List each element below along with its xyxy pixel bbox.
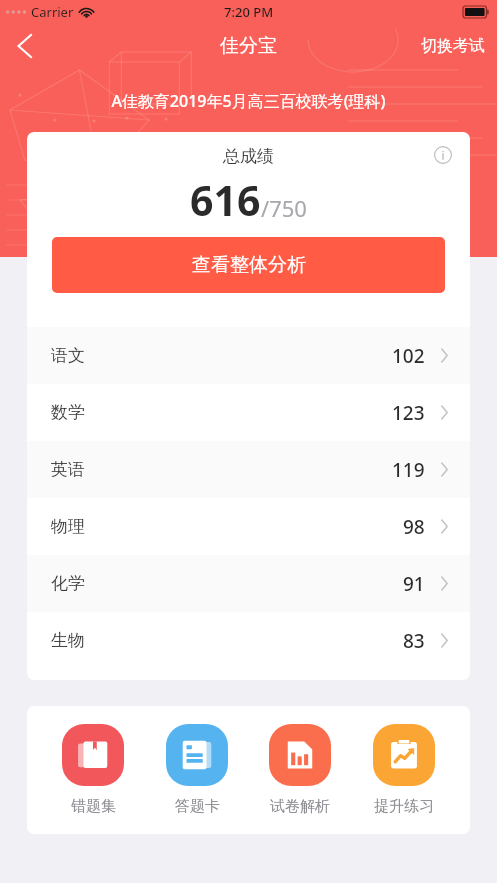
button[interactable]: 物理 xyxy=(27,498,470,555)
staticText: 98 xyxy=(403,514,425,540)
staticText: 616 xyxy=(190,172,261,228)
staticText: 119 xyxy=(392,457,425,483)
staticText: 83 xyxy=(403,628,425,654)
button[interactable]: 化学 xyxy=(27,555,470,612)
staticText: 查看整体分析 xyxy=(192,253,306,277)
button[interactable]: 提升练习 xyxy=(367,724,441,816)
staticText: A佳教育2019年5月高三百校联考(理科) xyxy=(0,90,497,112)
staticText: 切换考试 xyxy=(421,36,485,56)
button[interactable]: 试卷解析 xyxy=(263,724,337,816)
staticText: 语文 xyxy=(51,345,85,366)
button[interactable]: 数学 xyxy=(27,384,470,441)
staticText: 7:20 PM xyxy=(224,3,274,21)
button[interactable]: 错题集 xyxy=(56,724,130,816)
staticText: 答题卡 xyxy=(175,797,220,816)
staticText: 英语 xyxy=(51,459,85,480)
button[interactable]: 生物 xyxy=(27,612,470,669)
staticText: 123 xyxy=(392,400,425,426)
staticText: /750 xyxy=(261,193,307,223)
staticText: 总成绩 xyxy=(223,146,274,167)
staticText: 91 xyxy=(403,571,425,597)
button[interactable]: Info xyxy=(428,140,458,170)
staticText: 数学 xyxy=(51,402,85,423)
button[interactable]: 切换考试 xyxy=(421,24,485,68)
staticText: 生物 xyxy=(51,630,85,651)
staticText: 化学 xyxy=(51,573,85,594)
button[interactable]: Back xyxy=(0,24,48,68)
staticText: 提升练习 xyxy=(374,797,434,816)
staticText: Carrier xyxy=(31,3,74,21)
button[interactable]: 查看整体分析 xyxy=(52,237,445,293)
button[interactable]: 答题卡 xyxy=(160,724,234,816)
staticText: 102 xyxy=(392,343,425,369)
staticText: 错题集 xyxy=(71,797,116,816)
staticText: 佳分宝 xyxy=(220,34,277,58)
button[interactable]: 语文 xyxy=(27,327,470,384)
button[interactable]: 英语 xyxy=(27,441,470,498)
staticText: 物理 xyxy=(51,516,85,537)
staticText: 试卷解析 xyxy=(270,797,330,816)
